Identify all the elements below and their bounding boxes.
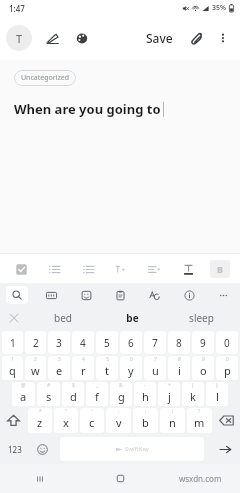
button[interactable]: Numbered list	[77, 259, 99, 279]
button[interactable]: ?	[187, 408, 212, 433]
button[interactable]: be	[98, 307, 167, 329]
button[interactable]: #	[37, 382, 60, 406]
button[interactable]: '	[80, 408, 104, 433]
staticText: w	[31, 363, 40, 378]
button[interactable]: 2	[25, 356, 46, 380]
button[interactable]: Translate	[143, 286, 165, 304]
button[interactable]: Bulleted list	[43, 259, 65, 279]
button[interactable]: Brush	[70, 26, 94, 50]
staticText: f	[95, 389, 99, 404]
staticText: 4	[80, 336, 86, 350]
staticText: s	[46, 389, 52, 404]
button[interactable]: 0	[216, 356, 238, 380]
button[interactable]: bed	[28, 307, 98, 329]
staticText: r	[81, 363, 86, 378]
staticText: a	[20, 389, 27, 404]
staticText: 2	[34, 356, 37, 363]
button[interactable]: ;	[133, 408, 158, 433]
button[interactable]: @	[12, 382, 35, 406]
staticText: 7	[152, 336, 158, 350]
staticText: 8	[178, 356, 181, 363]
button[interactable]: More options	[212, 27, 234, 49]
staticText: n	[169, 415, 176, 430]
button[interactable]: GIF	[40, 286, 62, 304]
staticText: 3	[56, 336, 62, 350]
staticText: i	[178, 363, 181, 378]
staticText: :	[118, 408, 120, 415]
button[interactable]: Alignment	[143, 259, 165, 279]
staticText: &	[119, 382, 123, 389]
staticText: @	[21, 382, 26, 389]
button[interactable]: Close suggestions	[0, 307, 28, 329]
button[interactable]: More	[212, 286, 234, 304]
staticText: 1	[10, 336, 16, 350]
button[interactable]: Text color	[177, 259, 199, 279]
button[interactable]: Draw	[40, 26, 64, 50]
button[interactable]: $	[62, 382, 84, 406]
button[interactable]: &	[110, 382, 132, 406]
button[interactable]: 6	[120, 331, 142, 354]
button[interactable]: 3	[48, 331, 70, 354]
button[interactable]: Info	[178, 286, 200, 304]
button[interactable]: 7	[144, 331, 166, 354]
button[interactable]: 8	[168, 331, 190, 354]
button[interactable]: +	[158, 382, 180, 406]
button[interactable]: !	[160, 408, 185, 433]
button[interactable]: 1	[2, 356, 23, 380]
staticText: !	[172, 408, 174, 415]
button[interactable]: -	[134, 382, 156, 406]
button[interactable]: 3	[48, 356, 70, 380]
button[interactable]: 8	[168, 356, 190, 380]
staticText: "	[65, 408, 68, 415]
button[interactable]: Enter	[210, 434, 240, 464]
button[interactable]: Text mode	[6, 25, 32, 51]
button[interactable]: Stickers	[75, 286, 97, 304]
button[interactable]: Backspace	[213, 407, 240, 434]
staticText: 4	[82, 356, 85, 363]
staticText: 3	[58, 356, 61, 363]
button[interactable]: Font size	[110, 259, 132, 279]
button[interactable]: Search	[6, 286, 28, 304]
button[interactable]: _	[86, 382, 108, 406]
staticText: l	[216, 389, 219, 404]
button[interactable]: Bold	[210, 260, 230, 278]
staticText: 6	[128, 336, 134, 350]
button[interactable]: 0	[216, 331, 238, 354]
button[interactable]: 9	[192, 356, 214, 380]
button[interactable]: 2	[25, 331, 46, 354]
staticText: bed	[54, 311, 72, 325]
button[interactable]: sleep	[167, 307, 236, 329]
button[interactable]: 1	[2, 331, 23, 354]
staticText: (	[192, 382, 194, 389]
button[interactable]: (	[182, 382, 204, 406]
button[interactable]: 7	[144, 356, 166, 380]
button[interactable]: 4	[72, 356, 94, 380]
button[interactable]: 6	[120, 356, 142, 380]
button[interactable]: Space	[60, 437, 204, 461]
button[interactable]: Back	[160, 464, 240, 493]
button[interactable]: Checklist	[10, 259, 32, 279]
staticText: j	[168, 389, 171, 404]
button[interactable]: "	[54, 408, 78, 433]
button[interactable]: 5	[96, 331, 118, 354]
button[interactable]: )	[206, 382, 228, 406]
staticText: c	[89, 415, 95, 430]
button[interactable]: Attach	[185, 26, 209, 50]
button[interactable]: *	[28, 408, 52, 433]
button[interactable]: :	[106, 408, 131, 433]
staticText: b	[142, 415, 149, 430]
button[interactable]: 4	[72, 331, 94, 354]
button[interactable]: Save	[142, 26, 177, 50]
button[interactable]: Shift	[0, 407, 27, 434]
staticText: _	[96, 382, 99, 389]
staticText: B	[217, 263, 223, 275]
button[interactable]: 9	[192, 331, 214, 354]
staticText: be	[126, 311, 139, 325]
button[interactable]: 123	[0, 434, 30, 464]
button[interactable]: Emoji	[30, 434, 54, 464]
button[interactable]: Uncategorized	[14, 70, 76, 86]
button[interactable]: Home	[80, 464, 160, 493]
button[interactable]: Clipboard	[109, 286, 131, 304]
button[interactable]: 5	[96, 356, 118, 380]
button[interactable]: Recent apps	[0, 464, 80, 493]
